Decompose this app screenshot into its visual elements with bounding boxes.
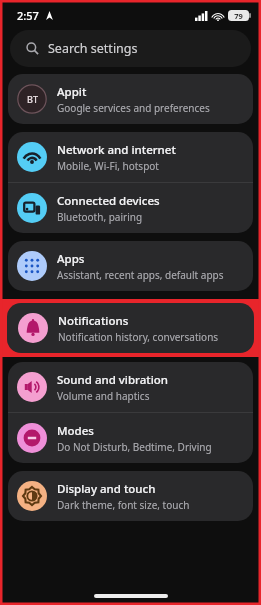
- staticText: Display and touch: [57, 481, 156, 497]
- staticText: Mobile, Wi-Fi, hotspot: [57, 159, 159, 173]
- staticText: BT: [27, 93, 38, 105]
- button[interactable]: Connected devices: [8, 183, 253, 233]
- staticText: Sound and vibration: [57, 372, 169, 388]
- staticText: Volume and haptics: [57, 389, 150, 403]
- staticText: Assistant, recent apps, default apps: [57, 268, 224, 282]
- staticText: Notifications: [58, 313, 129, 329]
- staticText: Do Not Disturb, Bedtime, Driving: [57, 440, 212, 454]
- button[interactable]: Network and internet: [8, 132, 253, 182]
- staticText: Network and internet: [57, 142, 176, 158]
- button[interactable]: Apps: [8, 241, 253, 291]
- staticText: 79: [234, 11, 243, 21]
- staticText: Apps: [57, 251, 85, 267]
- staticText: 2:57: [17, 8, 39, 23]
- button[interactable]: Search settings: [10, 30, 251, 67]
- staticText: Appit: [57, 84, 87, 100]
- staticText: Dark theme, font size, touch: [57, 498, 190, 512]
- button[interactable]: Notifications: [7, 303, 254, 353]
- staticText: Connected devices: [57, 193, 160, 209]
- button[interactable]: Display and touch: [8, 471, 253, 521]
- staticText: Search settings: [48, 40, 138, 57]
- button[interactable]: Sound and vibration: [8, 362, 253, 412]
- staticText: Bluetooth, pairing: [57, 210, 143, 224]
- staticText: Modes: [57, 423, 94, 439]
- button[interactable]: BT: [8, 74, 253, 124]
- button[interactable]: Modes: [8, 413, 253, 463]
- staticText: Notification history, conversations: [58, 330, 219, 344]
- staticText: Google services and preferences: [57, 101, 210, 115]
